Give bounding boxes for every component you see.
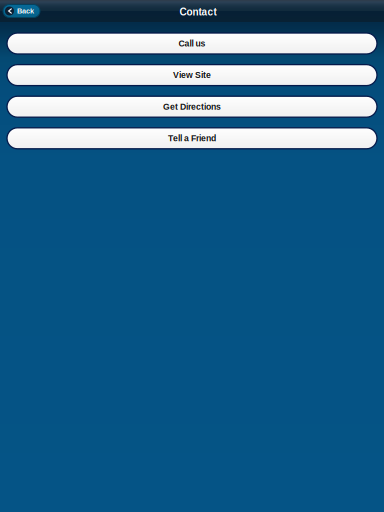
staticText: Back bbox=[17, 7, 34, 15]
button[interactable]: Call us bbox=[7, 33, 377, 54]
staticText: View Site bbox=[173, 70, 211, 80]
staticText: Contact bbox=[179, 6, 216, 18]
staticText: Call us bbox=[178, 39, 205, 48]
button[interactable]: Get Directions bbox=[7, 96, 377, 117]
button[interactable]: Back bbox=[3, 4, 40, 17]
button[interactable]: View Site bbox=[7, 65, 377, 86]
button[interactable]: Tell a Friend bbox=[7, 128, 377, 149]
staticText: Get Directions bbox=[163, 102, 221, 112]
staticText: Tell a Friend bbox=[168, 133, 216, 143]
